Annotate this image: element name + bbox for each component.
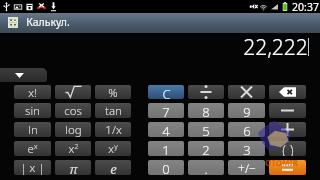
staticText: 5 xyxy=(202,122,210,137)
button[interactable]: Multiply xyxy=(228,85,265,99)
button[interactable]: Калькул. xyxy=(0,13,320,33)
button[interactable]: 8 xyxy=(188,103,224,118)
staticText: +/− xyxy=(238,160,256,175)
staticText: 1 xyxy=(162,141,170,156)
staticText: ln xyxy=(28,122,38,137)
button[interactable]: Equals xyxy=(269,160,306,175)
button[interactable]: 1/x xyxy=(95,122,131,137)
button[interactable]: ln xyxy=(14,122,51,137)
button[interactable]: log xyxy=(55,122,91,137)
staticText: 0 xyxy=(162,160,170,175)
button[interactable]: C xyxy=(148,85,184,99)
staticText: % xyxy=(108,85,118,99)
staticText: cos xyxy=(64,103,82,118)
staticText: sin xyxy=(25,103,40,118)
button[interactable]: 9 xyxy=(228,103,265,118)
button[interactable]: 0 xyxy=(148,160,184,175)
staticText: log xyxy=(65,122,82,137)
button[interactable]: 1 xyxy=(148,141,184,156)
staticText: 8 xyxy=(202,103,210,118)
staticText: | x | xyxy=(20,160,45,175)
staticText: ex xyxy=(27,141,38,156)
button[interactable]: ex xyxy=(14,141,51,156)
button[interactable]: tan xyxy=(95,103,131,118)
button[interactable]: % xyxy=(95,85,131,99)
staticText: . xyxy=(204,160,208,175)
button[interactable]: cos xyxy=(55,103,91,118)
staticText: π xyxy=(69,160,78,175)
staticText: e xyxy=(110,160,117,175)
button[interactable]: 3 xyxy=(228,141,265,156)
staticText: 3 xyxy=(243,141,251,156)
button[interactable]: Backspace xyxy=(269,85,306,99)
button[interactable]: Show advanced panel xyxy=(0,68,47,82)
button[interactable]: 2 xyxy=(188,141,224,156)
button[interactable]: x2 xyxy=(55,141,91,156)
staticText: 22,222 xyxy=(243,33,308,62)
button[interactable]: 4 xyxy=(148,122,184,137)
staticText: OTOMIR xyxy=(265,157,298,168)
staticText: C xyxy=(162,85,171,99)
staticText: Калькул. xyxy=(26,15,70,29)
button[interactable]: 5 xyxy=(188,122,224,137)
staticText: 4 xyxy=(162,122,170,137)
staticText: x! xyxy=(28,85,37,99)
staticText: 9 xyxy=(243,103,251,118)
staticText: 1/x xyxy=(105,122,122,137)
button[interactable]: Square root xyxy=(55,85,91,99)
staticText: 7 xyxy=(162,103,170,118)
staticText: 2 xyxy=(202,141,210,156)
button[interactable]: ( ) xyxy=(269,141,306,156)
staticText: x2 xyxy=(68,141,79,156)
button[interactable]: 6 xyxy=(228,122,265,137)
button[interactable]: x! xyxy=(14,85,51,99)
staticText: 6 xyxy=(243,122,251,137)
staticText: tan xyxy=(105,103,122,118)
button[interactable]: Divide xyxy=(188,85,224,99)
button[interactable]: sin xyxy=(14,103,51,118)
button[interactable]: Plus xyxy=(269,122,306,137)
button[interactable]: xy xyxy=(95,141,131,156)
button[interactable]: Minus xyxy=(269,103,306,118)
button[interactable]: +/− xyxy=(228,160,265,175)
button[interactable]: 7 xyxy=(148,103,184,118)
button[interactable]: | x | xyxy=(14,160,51,175)
button[interactable]: . xyxy=(188,160,224,175)
button[interactable]: π xyxy=(55,160,91,175)
staticText: 20:37 xyxy=(292,0,319,13)
button[interactable]: e xyxy=(95,160,131,175)
staticText: xy xyxy=(108,141,118,156)
staticText: ( ) xyxy=(282,141,294,156)
